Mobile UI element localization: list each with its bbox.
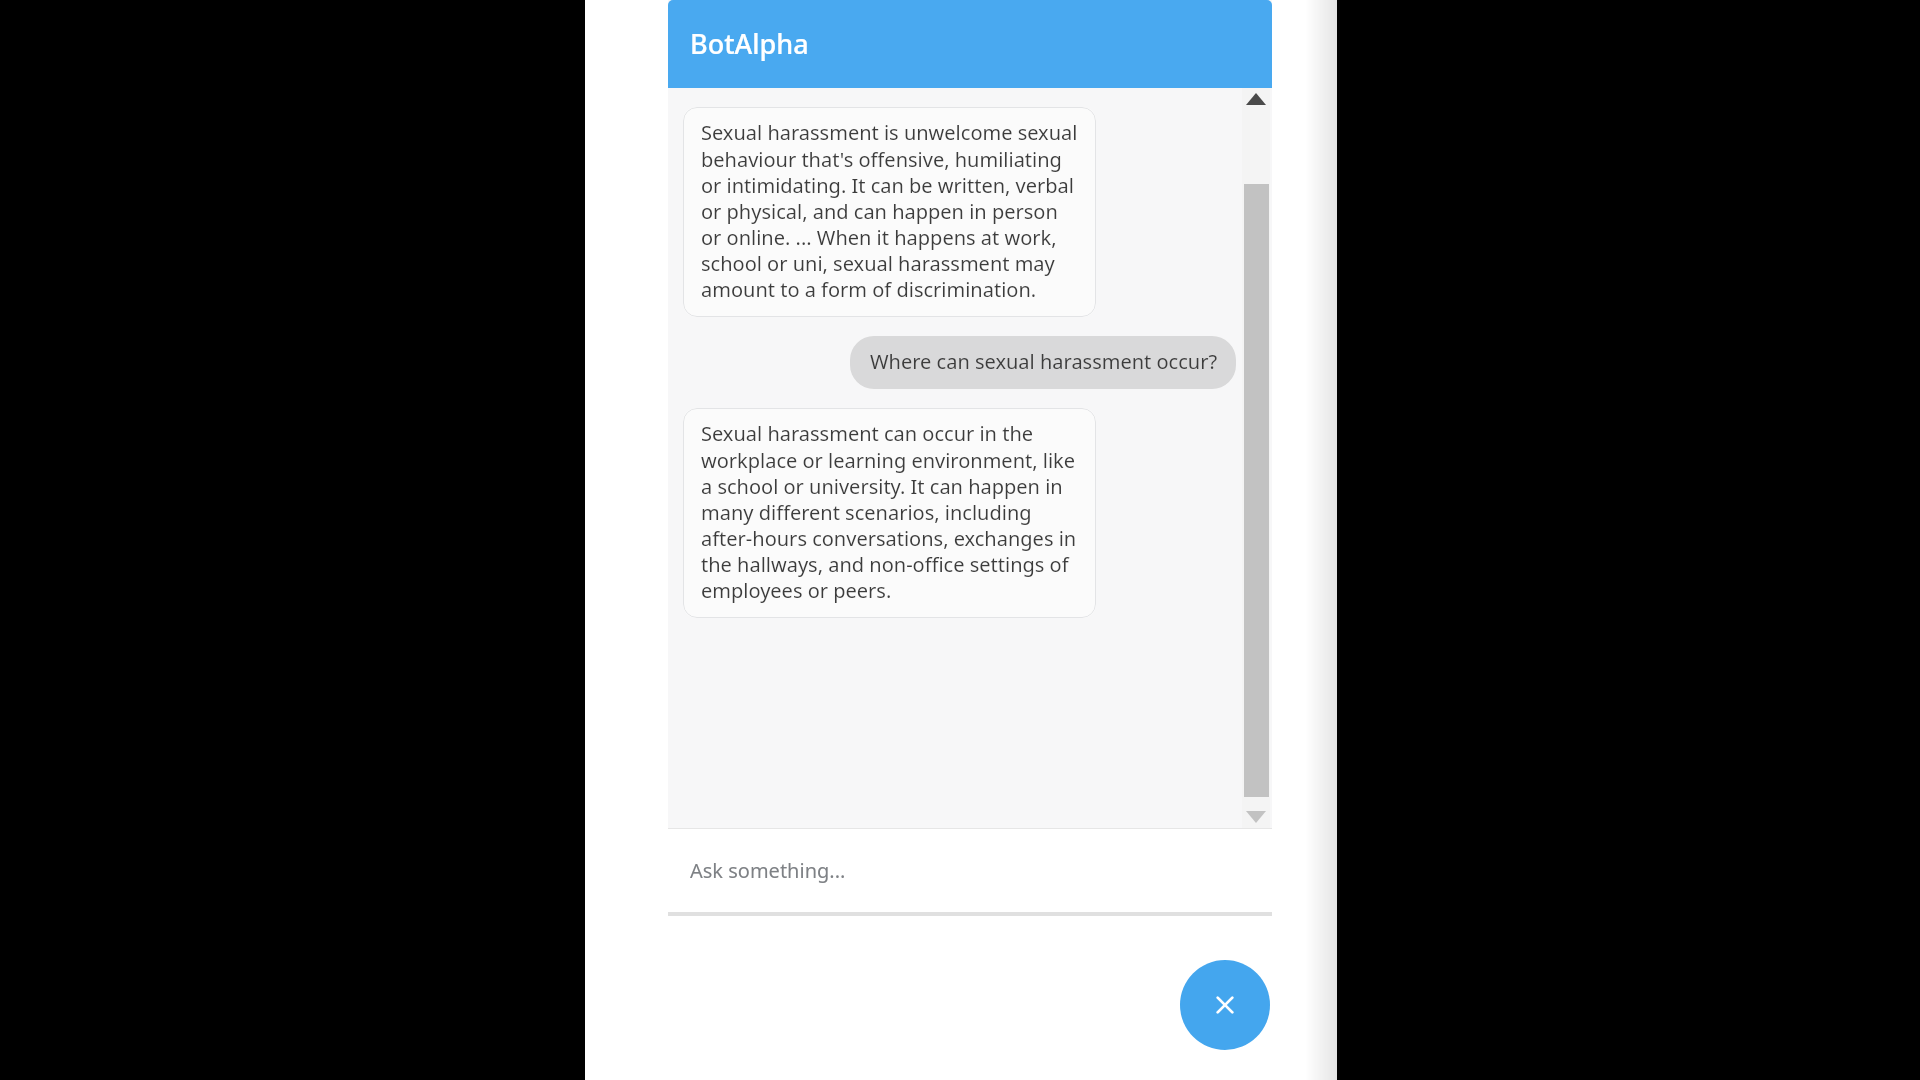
button[interactable]: Where can sexual harassment occur? <box>850 336 1236 389</box>
staticText: Sexual harassment is unwelcome sexual be… <box>701 119 1081 303</box>
button[interactable]: Sexual harassment is unwelcome sexual be… <box>683 107 1096 317</box>
button[interactable]: BotAlpha <box>668 0 1272 88</box>
button[interactable]: Close chat <box>1180 960 1270 1050</box>
staticText: Sexual harassment can occur in the workp… <box>701 420 1081 604</box>
button[interactable]: Sexual harassment can occur in the workp… <box>683 408 1096 618</box>
staticText: BotAlpha <box>690 25 809 62</box>
staticText: Where can sexual harassment occur? <box>870 348 1218 375</box>
button[interactable]: Ask something... <box>668 828 1272 912</box>
staticText: Ask something... <box>690 857 846 884</box>
